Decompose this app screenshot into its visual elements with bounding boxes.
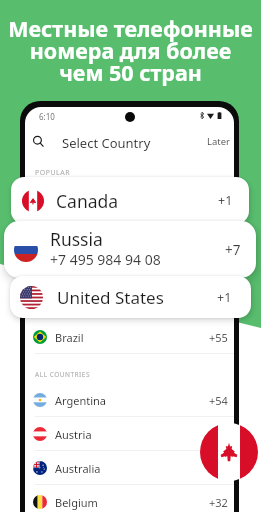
staticText: Select Country	[62, 134, 151, 152]
button[interactable]: Canada	[200, 423, 258, 481]
staticText: Russia	[50, 227, 103, 251]
button[interactable]: United States	[10, 276, 251, 318]
staticText: Austria	[55, 427, 92, 442]
staticText: Belgium	[55, 495, 98, 510]
staticText: +1	[218, 192, 233, 209]
button[interactable]: Search	[32, 135, 45, 148]
button[interactable]: Australia	[25, 451, 234, 485]
staticText: +7 495 984 94 08	[50, 250, 161, 269]
button[interactable]: Brazil	[25, 320, 234, 354]
staticText: Argentina	[55, 393, 107, 408]
staticText: United States	[57, 286, 164, 309]
button[interactable]: Russia	[4, 221, 256, 278]
staticText: +1	[217, 289, 232, 306]
staticText: +32	[209, 495, 228, 510]
button[interactable]: Later	[203, 132, 234, 151]
staticText: +54	[209, 393, 228, 408]
staticText: ALL COUNTRIES	[35, 370, 90, 379]
button[interactable]: Canada	[11, 177, 249, 224]
staticText: Brazil	[55, 330, 84, 345]
button[interactable]: Belgium	[25, 485, 234, 512]
staticText: Australia	[55, 461, 101, 476]
button[interactable]: Argentina	[25, 383, 234, 417]
staticText: +7	[225, 241, 241, 259]
staticText: POPULAR	[35, 168, 71, 178]
button[interactable]: Austria	[25, 417, 234, 451]
staticText: Местные телефонные номера для более чем …	[0, 14, 261, 88]
staticText: 6:10	[39, 111, 55, 122]
staticText: Later	[207, 135, 231, 148]
staticText: +55	[209, 330, 228, 345]
staticText: Canada	[56, 189, 119, 213]
